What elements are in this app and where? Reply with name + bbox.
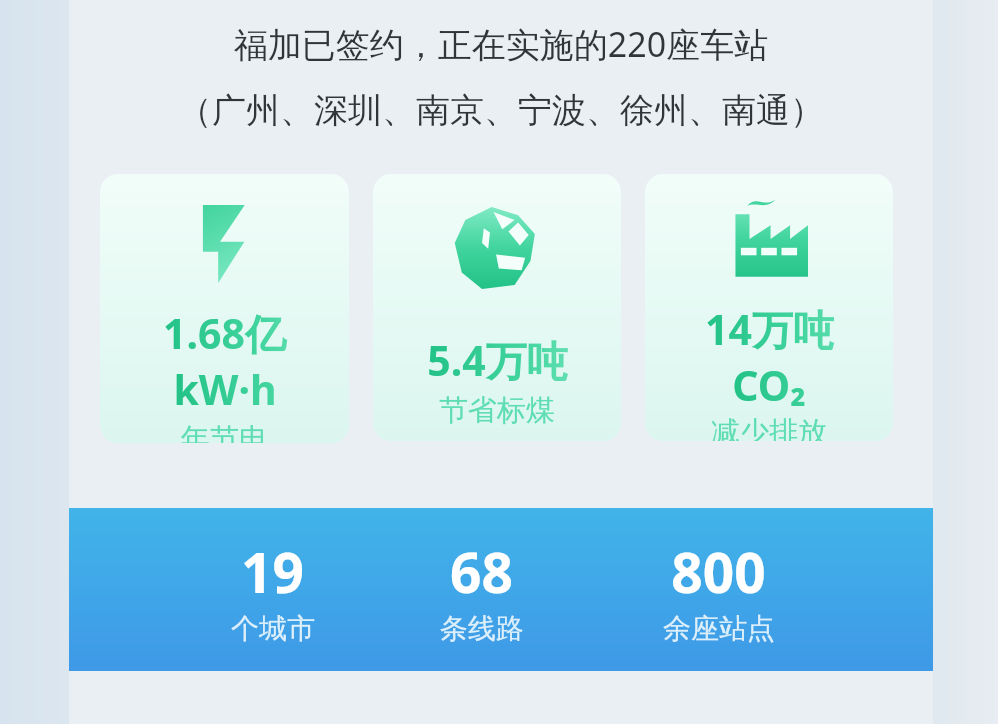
staticText: 1.68亿: [163, 305, 286, 361]
staticText: 800: [671, 534, 766, 609]
button[interactable]: Electricity saved: [100, 174, 349, 443]
staticText: 条线路: [440, 611, 524, 646]
button[interactable]: Emissions reduced: [645, 174, 893, 441]
other: Electricity saved: [202, 205, 247, 283]
other: Emissions reduced: [730, 195, 808, 283]
button[interactable]: 800: [636, 508, 801, 671]
staticText: 个城市: [231, 611, 315, 646]
staticText: 节省标煤: [439, 392, 555, 429]
staticText: 余座站点: [663, 611, 775, 646]
staticText: 14万吨: [705, 301, 834, 357]
staticText: kW·h: [173, 361, 277, 417]
staticText: CO₂: [732, 357, 806, 413]
staticText: 5.4万吨: [427, 332, 568, 388]
staticText: 68: [450, 534, 513, 609]
button[interactable]: 19: [69, 508, 933, 671]
other: Standard coal saved: [453, 207, 541, 289]
staticText: 年节电: [181, 421, 268, 443]
button[interactable]: Standard coal saved: [373, 174, 621, 441]
button[interactable]: 68: [412, 508, 551, 671]
staticText: 19: [241, 534, 304, 609]
staticText: 减少排放: [711, 414, 827, 441]
staticText: 福加已签约，正在实施的220座车站: [69, 21, 933, 67]
button[interactable]: 19: [203, 508, 342, 671]
staticText: （广州、深圳、南京、宁波、徐州、南通）: [69, 89, 933, 132]
